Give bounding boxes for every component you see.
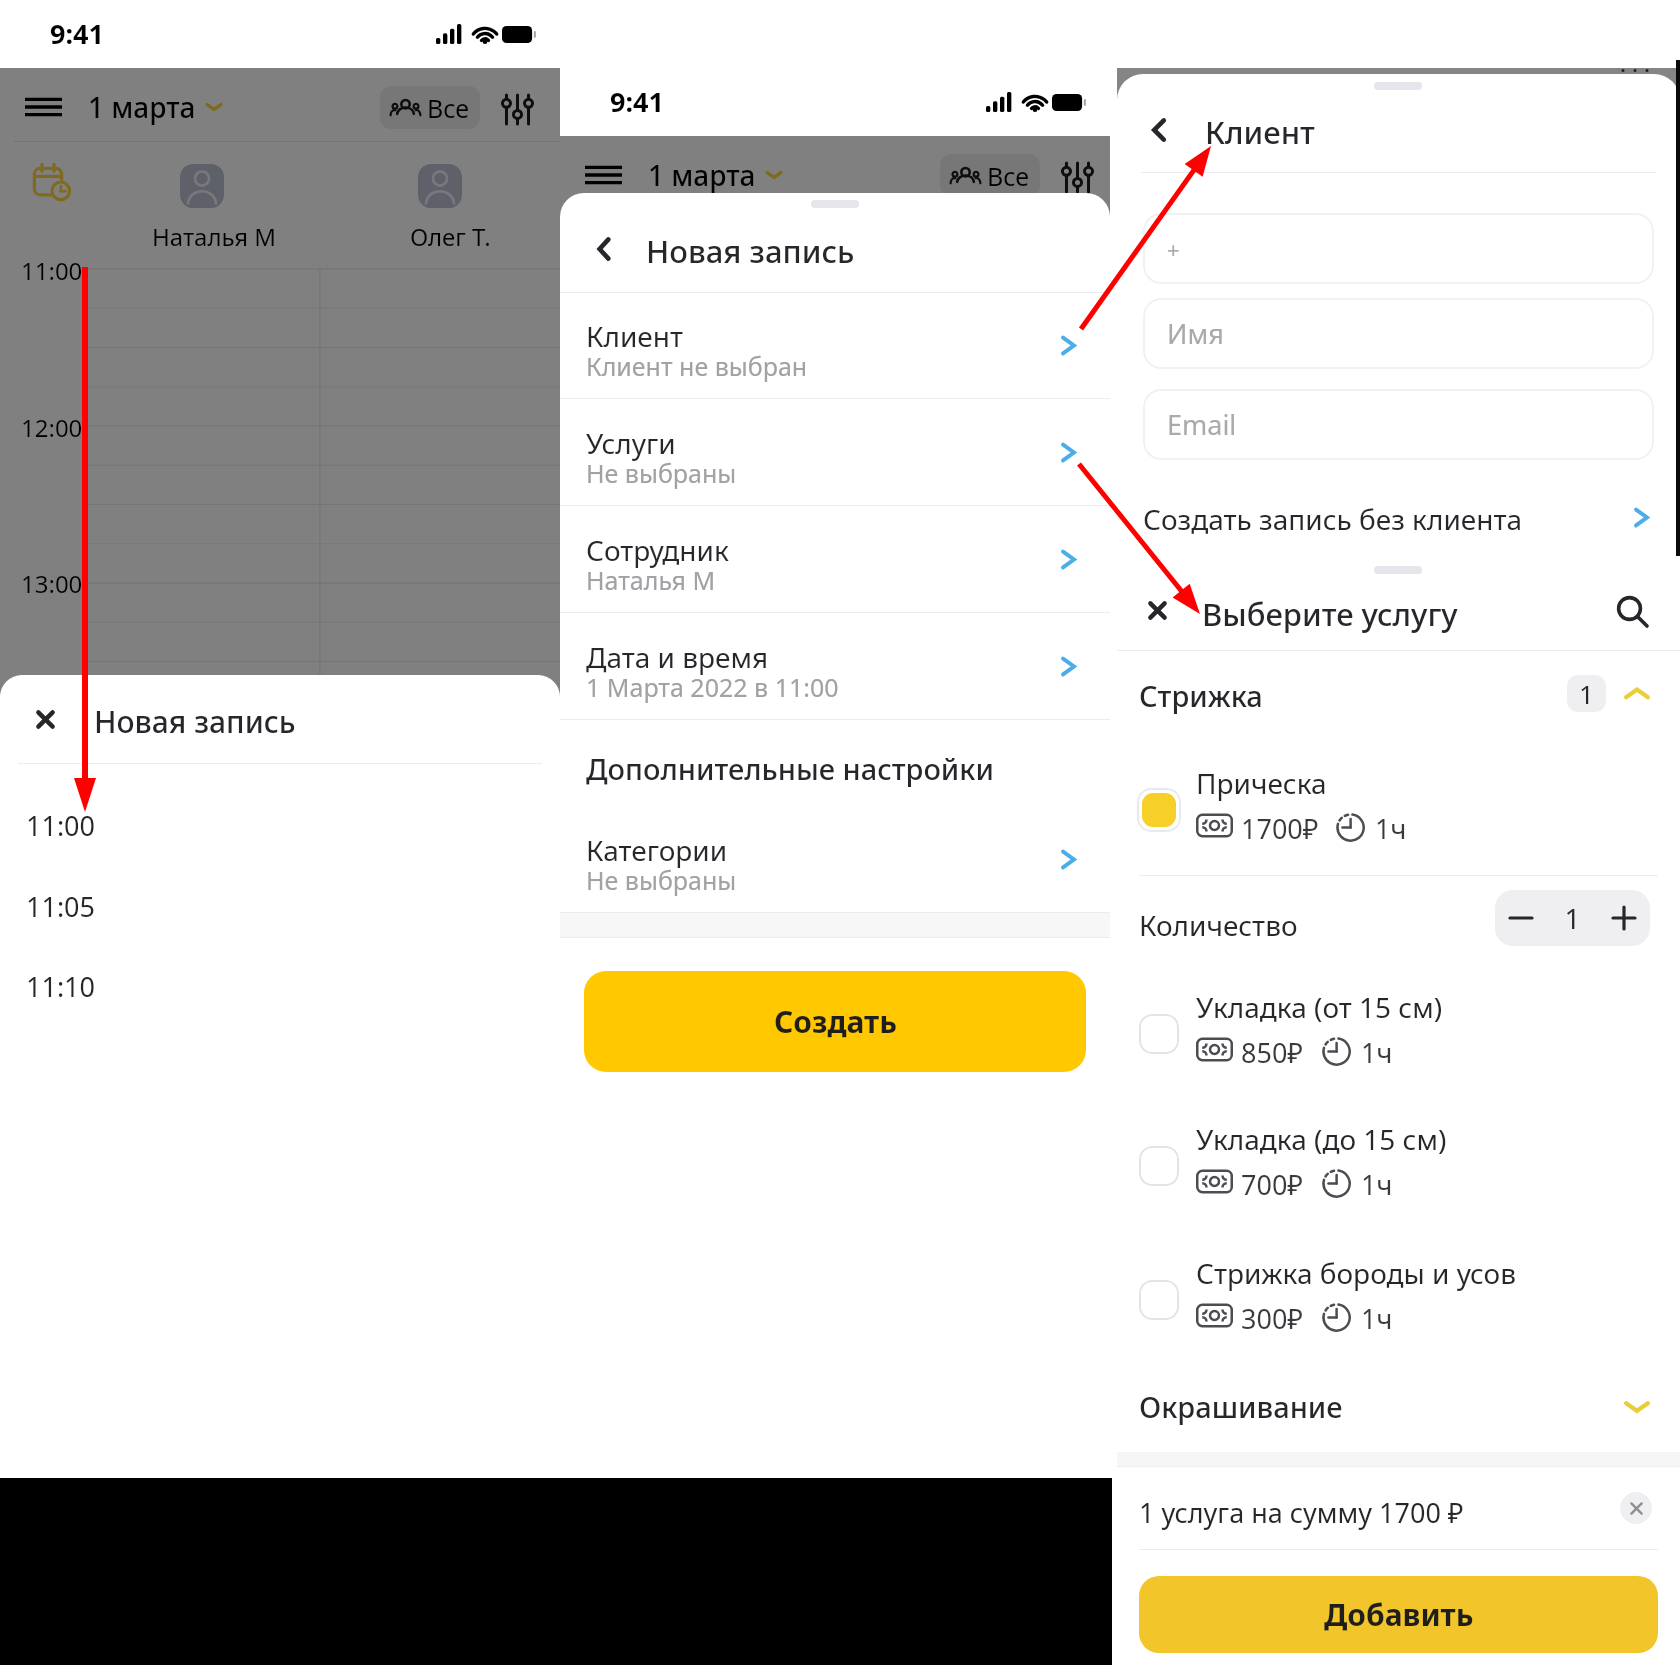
staticText: 1ч: [1361, 1166, 1393, 1203]
button[interactable]: Menu: [25, 97, 62, 117]
button[interactable]: Increase: [1598, 890, 1650, 946]
staticText: Создать: [774, 1001, 897, 1042]
staticText: 1 Марта 2022 в 11:00: [586, 670, 839, 704]
button[interactable]: Клиент: [560, 292, 1110, 399]
button[interactable]: Email: [1143, 389, 1654, 460]
button[interactable]: Сотрудник: [560, 506, 1110, 613]
button[interactable]: Стрижка: [1117, 651, 1680, 739]
button[interactable]: Имя: [1143, 298, 1654, 369]
button[interactable]: Дата и время: [560, 613, 1110, 720]
staticText: Стрижка бороды и усов: [1196, 1254, 1517, 1292]
staticText: Дата и время: [586, 638, 769, 676]
button[interactable]: Close: [35, 709, 56, 730]
staticText: 9:41: [50, 15, 104, 52]
button[interactable]: Укладка (до 15 см): [1117, 1114, 1680, 1232]
staticText: 1ч: [1375, 810, 1407, 847]
button[interactable]: Создать запись без клиента: [1117, 482, 1680, 554]
button[interactable]: 11:05: [26, 888, 96, 925]
staticText: Клиент: [1205, 111, 1315, 153]
staticText: 1 марта: [648, 156, 756, 194]
staticText: Наталья М: [586, 563, 716, 597]
staticText: Новая запись: [646, 230, 855, 272]
staticText: Олег Т.: [970, 288, 1051, 321]
staticText: Сотрудник: [586, 531, 729, 569]
button[interactable]: 1 марта: [88, 88, 224, 126]
staticText: Наталья М: [712, 288, 836, 321]
staticText: Укладка (от 15 см): [1196, 988, 1443, 1026]
button[interactable]: Все: [940, 154, 1040, 197]
button[interactable]: Окрашивание: [1117, 1366, 1680, 1452]
staticText: 1700₽: [1241, 810, 1319, 847]
staticText: Количество: [1139, 906, 1298, 944]
staticText: 300₽: [1241, 1300, 1304, 1337]
button[interactable]: 11:00: [26, 807, 96, 844]
staticText: 1 марта: [88, 88, 196, 126]
button[interactable]: Menu: [585, 165, 622, 185]
button[interactable]: Выберите услугу: [1202, 593, 1458, 635]
button[interactable]: Back: [593, 233, 615, 265]
button[interactable]: Укладка (от 15 см): [1117, 982, 1680, 1100]
button[interactable]: Filters: [503, 94, 532, 125]
staticText: +: [1167, 234, 1180, 264]
staticText: Клиент: [586, 317, 683, 355]
staticText: 1ч: [1361, 1300, 1393, 1337]
staticText: Прическа: [1196, 764, 1327, 802]
button[interactable]: Back: [1147, 114, 1171, 146]
button[interactable]: Создать: [584, 971, 1086, 1072]
staticText: Укладка (до 15 см): [1196, 1120, 1447, 1158]
button[interactable]: Search: [1616, 595, 1649, 628]
button[interactable]: Категории: [560, 806, 1110, 913]
button[interactable]: Все: [380, 86, 480, 129]
staticText: 11:00: [581, 322, 643, 355]
staticText: Дополнительные настройки: [586, 749, 994, 788]
button[interactable]: Стрижка бороды и усов: [1117, 1248, 1680, 1366]
staticText: 13:00: [21, 567, 83, 600]
staticText: 9:41: [610, 83, 664, 120]
button[interactable]: Добавить: [1139, 1576, 1658, 1653]
staticText: Не выбраны: [586, 456, 737, 490]
button[interactable]: Прическа: [1117, 758, 1680, 876]
button[interactable]: 1 марта: [648, 156, 784, 194]
staticText: 700₽: [1241, 1166, 1304, 1203]
staticText: 12:00: [581, 479, 643, 512]
staticText: 1: [1579, 676, 1594, 711]
staticText: Олег Т.: [410, 220, 491, 253]
staticText: Email: [1167, 406, 1237, 443]
staticText: Стрижка: [1139, 676, 1263, 715]
staticText: Услуги: [586, 424, 676, 462]
staticText: Все: [427, 91, 470, 125]
staticText: Имя: [1167, 315, 1224, 352]
staticText: Создать запись без клиента: [1143, 500, 1522, 538]
staticText: Категории: [586, 831, 728, 869]
staticText: 850₽: [1241, 1034, 1304, 1071]
staticText: 13:00: [581, 635, 643, 668]
staticText: 1: [1547, 899, 1598, 937]
staticText: Не выбраны: [586, 863, 737, 897]
staticText: Клиент не выбран: [586, 349, 808, 383]
button[interactable]: Close: [1147, 600, 1168, 621]
staticText: Окрашивание: [1139, 1387, 1343, 1426]
button[interactable]: 11:10: [26, 968, 96, 1005]
staticText: Наталья М: [152, 220, 276, 253]
staticText: Все: [987, 159, 1030, 193]
button[interactable]: +: [1143, 213, 1654, 284]
button[interactable]: Filters: [1063, 162, 1092, 193]
button[interactable]: Decrease: [1495, 890, 1547, 946]
staticText: 1 услуга на сумму 1700 ₽: [1139, 1494, 1464, 1531]
staticText: Новая запись: [94, 701, 296, 742]
staticText: 1ч: [1361, 1034, 1393, 1071]
staticText: 12:00: [21, 411, 83, 444]
staticText: Добавить: [1324, 1594, 1474, 1635]
button[interactable]: Clear selection: [1620, 1492, 1652, 1524]
staticText: 11:00: [21, 254, 83, 287]
button[interactable]: Услуги: [560, 399, 1110, 506]
